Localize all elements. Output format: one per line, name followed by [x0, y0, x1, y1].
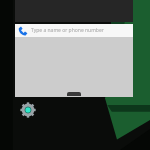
button[interactable] — [15, 37, 133, 97]
button[interactable]: Settings — [20, 102, 36, 118]
other: Dial — [18, 26, 28, 36]
button[interactable]: Dial — [15, 24, 133, 37]
staticText: Type a name or phone number — [31, 27, 104, 34]
